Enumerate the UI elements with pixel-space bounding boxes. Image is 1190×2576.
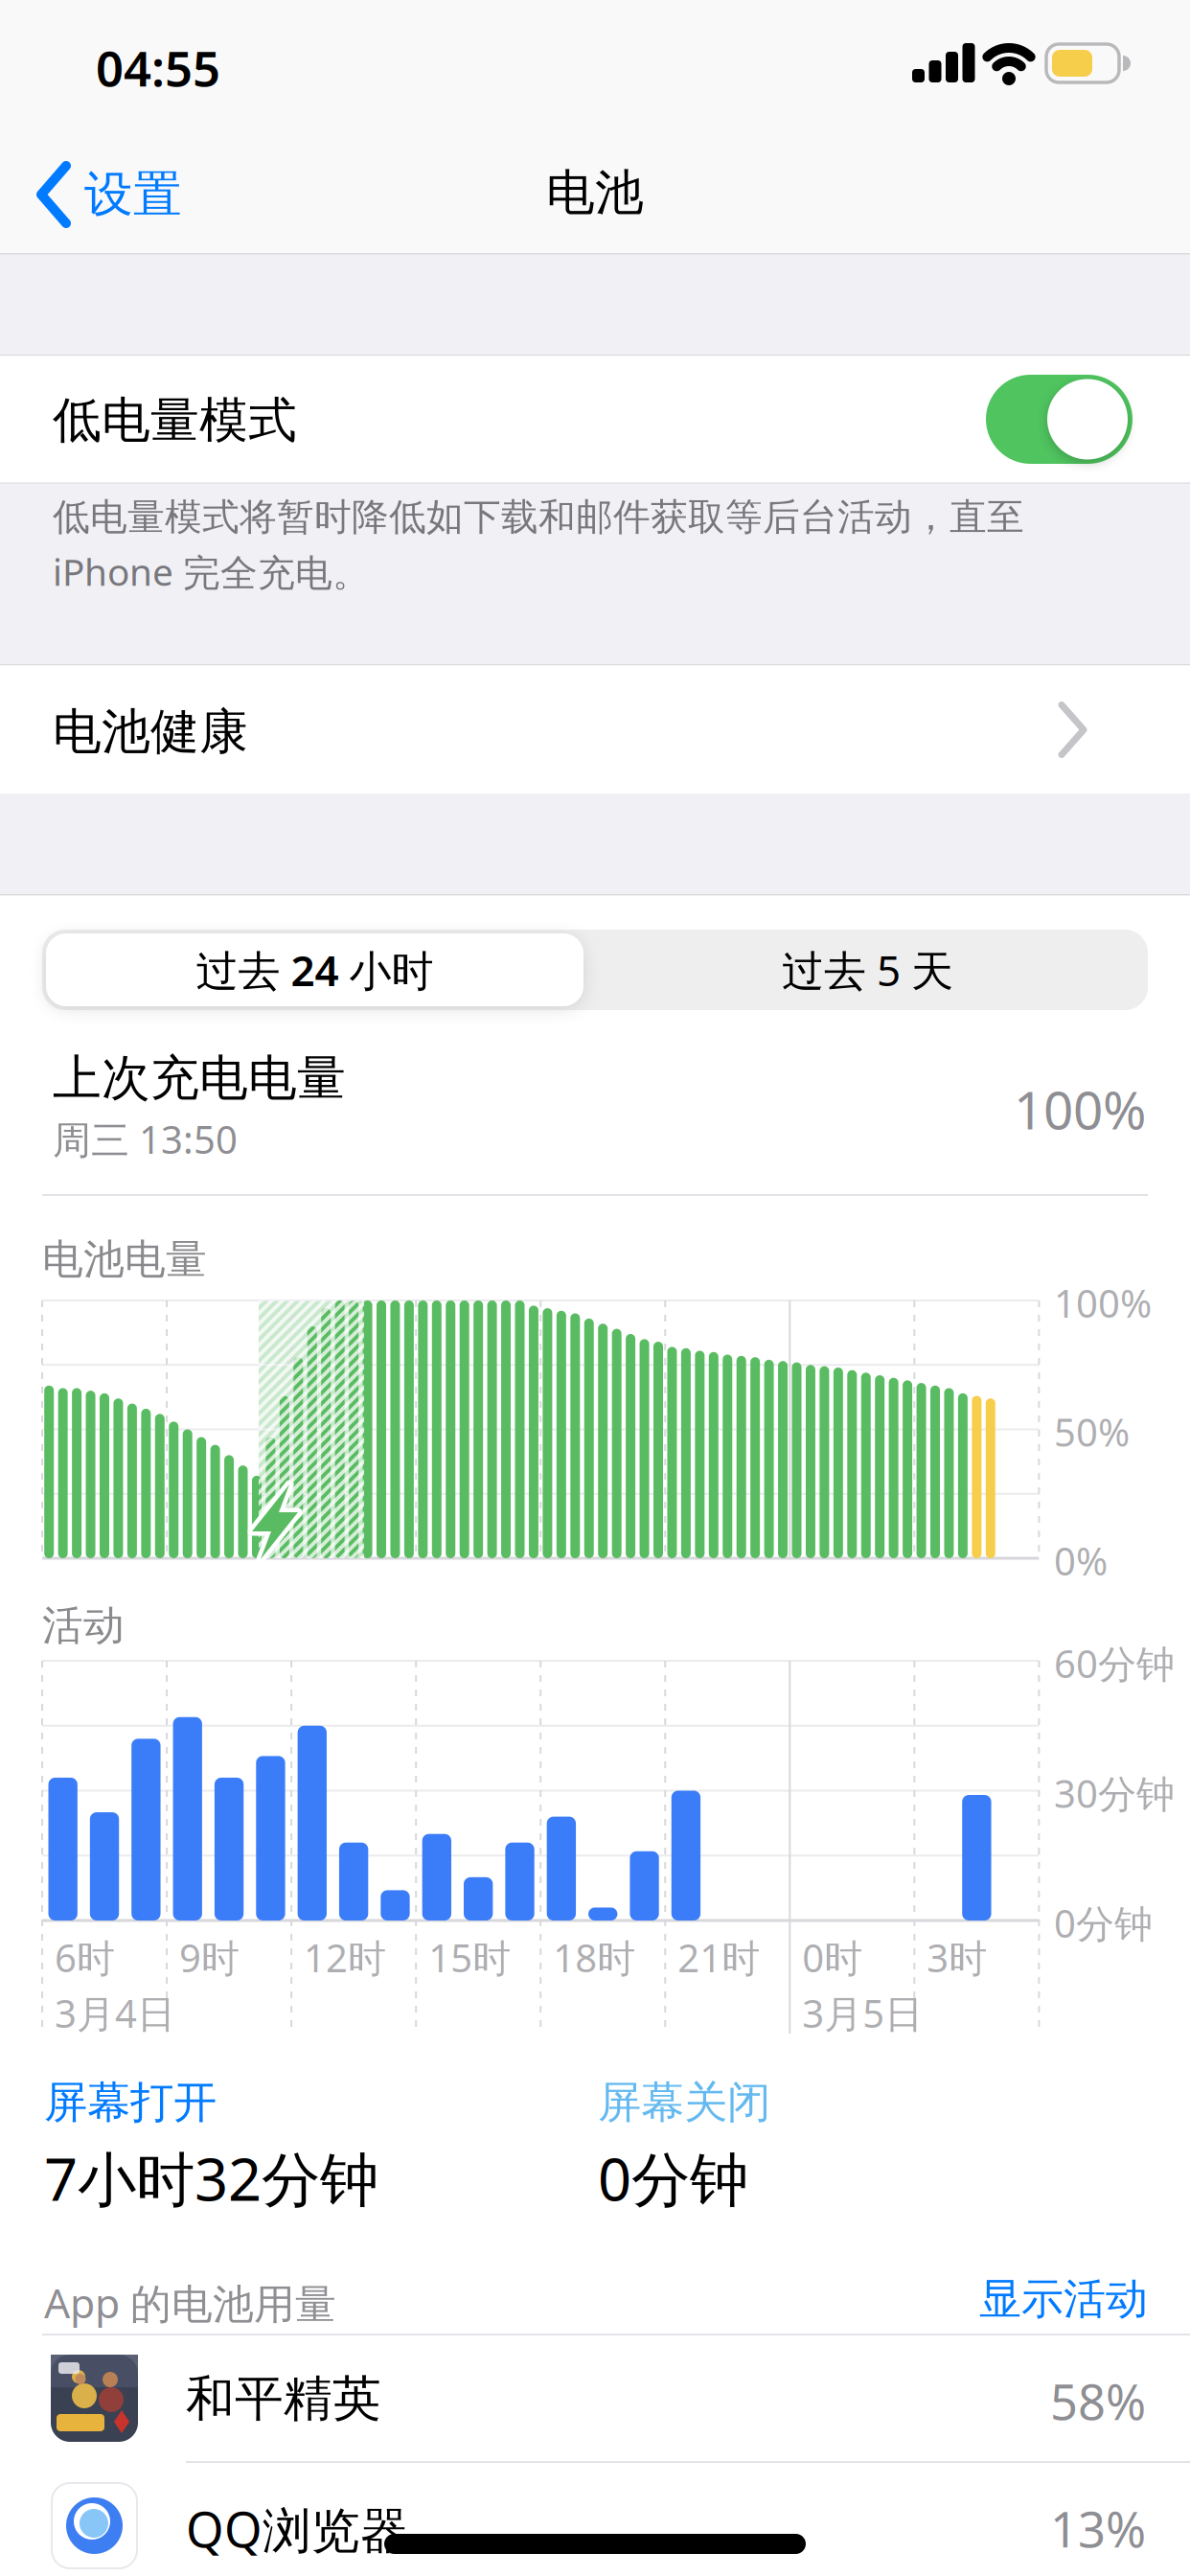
button[interactable]: 过去 5 天 — [587, 930, 1148, 1010]
staticText: QQ浏览器 — [186, 2496, 409, 2561]
staticText: 电池电量 — [42, 1234, 207, 1285]
staticText: 电池 — [546, 163, 644, 223]
button[interactable]: 返回设置 — [36, 161, 182, 228]
staticText: 低电量模式将暂时降低如下载和邮件获取等后台活动，直至 — [53, 494, 1024, 540]
staticText: 18时 — [553, 1932, 635, 1983]
button[interactable]: 电池健康 — [0, 666, 1190, 794]
staticText: 15时 — [428, 1932, 511, 1983]
staticText: 和平精英 — [186, 2369, 381, 2429]
button[interactable]: 过去 24 小时 — [42, 930, 587, 1010]
staticText: 上次充电电量 — [53, 1048, 346, 1108]
staticText: 50% — [1054, 1406, 1130, 1457]
staticText: 0分钟 — [1054, 1897, 1153, 1948]
staticText: 电池健康 — [53, 702, 248, 762]
staticText: 9时 — [179, 1932, 240, 1983]
staticText: 7小时32分钟 — [44, 2139, 378, 2217]
button[interactable]: 显示活动 — [860, 2273, 1148, 2325]
staticText: 过去 24 小时 — [196, 942, 434, 998]
staticText: 0时 — [802, 1932, 863, 1983]
staticText: 3月4日 — [55, 1988, 175, 2038]
staticText: 设置 — [84, 165, 182, 224]
staticText: 04:55 — [96, 35, 220, 100]
staticText: 30分钟 — [1054, 1768, 1175, 1819]
staticText: 周三 13:50 — [53, 1114, 238, 1164]
staticText: 60分钟 — [1054, 1638, 1175, 1689]
staticText: App 的电池用量 — [44, 2275, 336, 2330]
staticText: 13% — [1050, 2496, 1146, 2561]
staticText: iPhone 完全充电。 — [53, 547, 370, 596]
staticText: 屏幕关闭 — [598, 2076, 770, 2129]
button[interactable]: 和平精英 — [0, 2334, 1190, 2462]
staticText: 活动 — [42, 1600, 125, 1651]
staticText: 100% — [1014, 1074, 1146, 1144]
staticText: 3时 — [927, 1932, 987, 1983]
staticText: 6时 — [55, 1932, 115, 1983]
staticText: 3月5日 — [802, 1988, 923, 2038]
staticText: 100% — [1054, 1277, 1152, 1328]
staticText: 21时 — [678, 1932, 760, 1983]
staticText: 低电量模式 — [53, 391, 297, 450]
staticText: 0分钟 — [598, 2139, 748, 2217]
button[interactable]: QQ浏览器 — [0, 2462, 1190, 2576]
button[interactable]: 低电量模式 — [0, 356, 1190, 483]
staticText: 过去 5 天 — [782, 942, 953, 998]
staticText: 0% — [1054, 1535, 1108, 1586]
staticText: 58% — [1050, 2369, 1146, 2433]
staticText: 显示活动 — [979, 2273, 1148, 2325]
staticText: 屏幕打开 — [44, 2076, 217, 2129]
staticText: 12时 — [304, 1932, 386, 1983]
